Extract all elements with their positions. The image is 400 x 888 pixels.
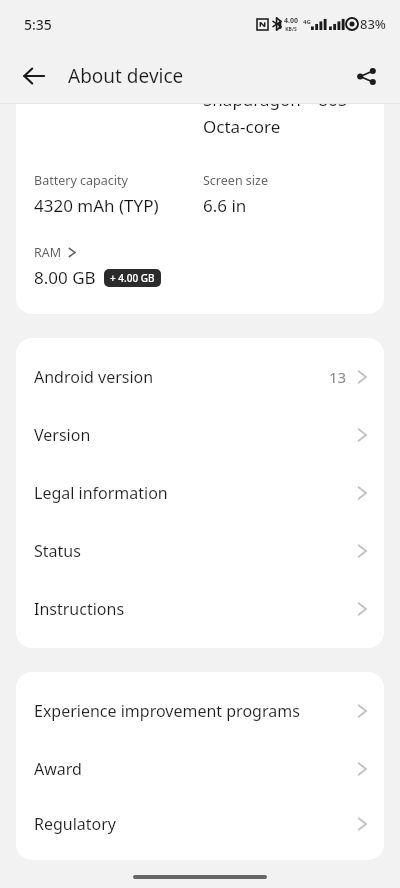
staticText: About device — [68, 63, 184, 89]
staticText: Android version — [34, 366, 329, 388]
staticText: Octa-core — [203, 115, 281, 138]
staticText: Status — [34, 540, 357, 562]
staticText: Screen size — [203, 172, 268, 189]
staticText: 6.6 in — [203, 194, 247, 217]
staticText: Regulatory — [34, 813, 357, 835]
staticText: Legal information — [34, 482, 357, 504]
staticText: RAM — [34, 244, 62, 261]
staticText: Snapdragon™ 865 — [203, 104, 348, 111]
staticText: 13 — [329, 367, 347, 387]
button[interactable]: Version — [16, 406, 384, 464]
staticText: Version — [34, 424, 357, 446]
staticText: Experience improvement programs — [34, 700, 357, 722]
staticText: 4320 mAh (TYP) — [34, 194, 159, 217]
button[interactable]: Regulatory — [16, 798, 384, 850]
button[interactable]: Instructions — [16, 580, 384, 638]
button[interactable]: Legal information — [16, 464, 384, 522]
staticText: 5:35 — [24, 15, 52, 34]
staticText: 83% — [360, 15, 386, 33]
staticText: Battery capacity — [34, 172, 128, 189]
staticText: + 4.00 GB — [110, 271, 155, 285]
staticText: Award — [34, 758, 357, 780]
button[interactable]: RAM — [34, 244, 77, 261]
button[interactable]: Award — [16, 740, 384, 798]
staticText: 4.00 — [284, 16, 298, 26]
button[interactable]: Status — [16, 522, 384, 580]
button[interactable]: Share — [344, 54, 388, 98]
staticText: KB/S — [285, 26, 297, 33]
button[interactable]: Back — [12, 54, 56, 98]
staticText: Instructions — [34, 598, 357, 620]
staticText: 4G — [303, 18, 311, 26]
staticText: 8.00 GB — [34, 266, 96, 289]
button[interactable]: Experience improvement programs — [16, 682, 384, 740]
button[interactable]: Android version — [16, 348, 384, 406]
